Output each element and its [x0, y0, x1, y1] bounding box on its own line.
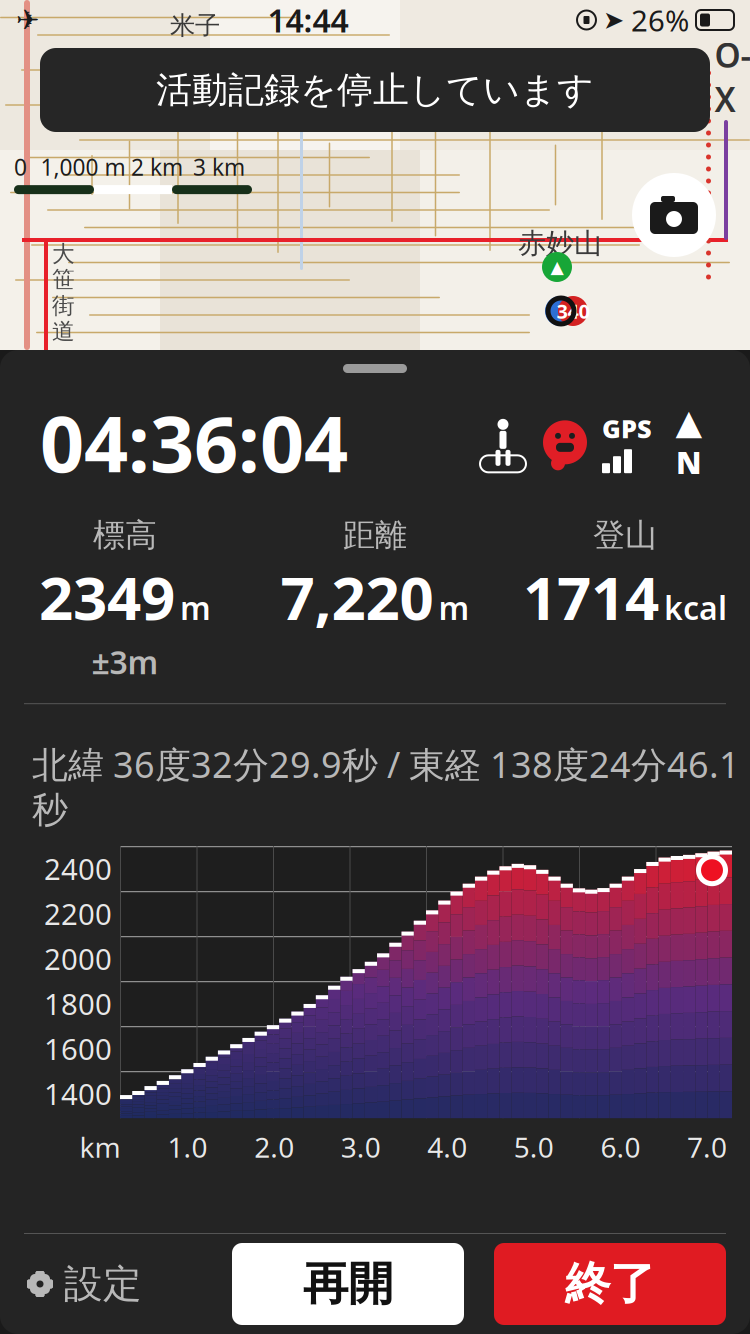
staticText: 2 km [131, 152, 183, 182]
staticText: 2349 [39, 557, 175, 637]
staticText: 活動記録を停止しています [156, 68, 594, 112]
staticText: 1714 [523, 557, 659, 637]
staticText: 5.0 [514, 1128, 554, 1165]
staticText: GPS [602, 411, 652, 445]
staticText: 再開 [303, 1256, 393, 1312]
staticText: 2.0 [254, 1128, 294, 1165]
staticText: 標高 [93, 516, 157, 555]
staticText: 赤妙山 [518, 226, 602, 260]
staticText: 終了 [565, 1256, 655, 1312]
staticText: m [180, 586, 211, 629]
staticText: 2400 [44, 849, 112, 888]
staticText: 3.0 [341, 1128, 381, 1165]
button[interactable]: カメラ [632, 173, 716, 257]
staticText: 340 [556, 298, 589, 324]
staticText: m [438, 586, 469, 629]
staticText: ➤ [603, 6, 624, 34]
staticText: 7.0 [687, 1128, 727, 1165]
staticText: 大 [52, 240, 75, 268]
staticText: ▲ [675, 402, 702, 442]
staticText: 登山 [593, 516, 657, 555]
staticText: OX [714, 33, 750, 121]
button[interactable]: 終了 [494, 1243, 726, 1325]
staticText: 0 [14, 152, 27, 182]
staticText: 設定 [64, 1260, 142, 1308]
staticText: km [79, 1128, 120, 1165]
button[interactable]: 再開 [232, 1243, 464, 1325]
staticText: 4.0 [427, 1128, 467, 1165]
staticText: 1600 [44, 1029, 112, 1068]
staticText: 26% [631, 0, 689, 39]
staticText: ▲ [550, 257, 563, 277]
staticText: 1400 [44, 1074, 112, 1113]
staticText: 14:44 [267, 0, 348, 41]
staticText: 1.0 [168, 1128, 208, 1165]
staticText: 北緯 36度32分29.9秒 / 東経 138度24分46.1秒 [32, 740, 740, 832]
staticText: N [676, 442, 702, 482]
staticText: 距離 [343, 516, 407, 555]
staticText: 2200 [44, 894, 112, 933]
staticText: 1800 [44, 984, 112, 1023]
staticText: 7,220 [280, 557, 433, 637]
staticText: 6.0 [600, 1128, 640, 1165]
staticText: 1,000 m [40, 152, 125, 182]
staticText: ✈ [16, 4, 39, 36]
staticText: 米子 [170, 10, 220, 41]
staticText: 3 km [193, 152, 245, 182]
staticText: 笹 [52, 266, 75, 294]
staticText: kcal [664, 586, 727, 629]
staticText: 04:36:04 [40, 391, 348, 494]
staticText: ±3m [91, 641, 158, 683]
staticText: 道 [52, 317, 75, 345]
button[interactable]: 設定 [0, 1238, 142, 1330]
staticText: 2000 [44, 939, 112, 978]
staticText: 街 [52, 292, 75, 319]
